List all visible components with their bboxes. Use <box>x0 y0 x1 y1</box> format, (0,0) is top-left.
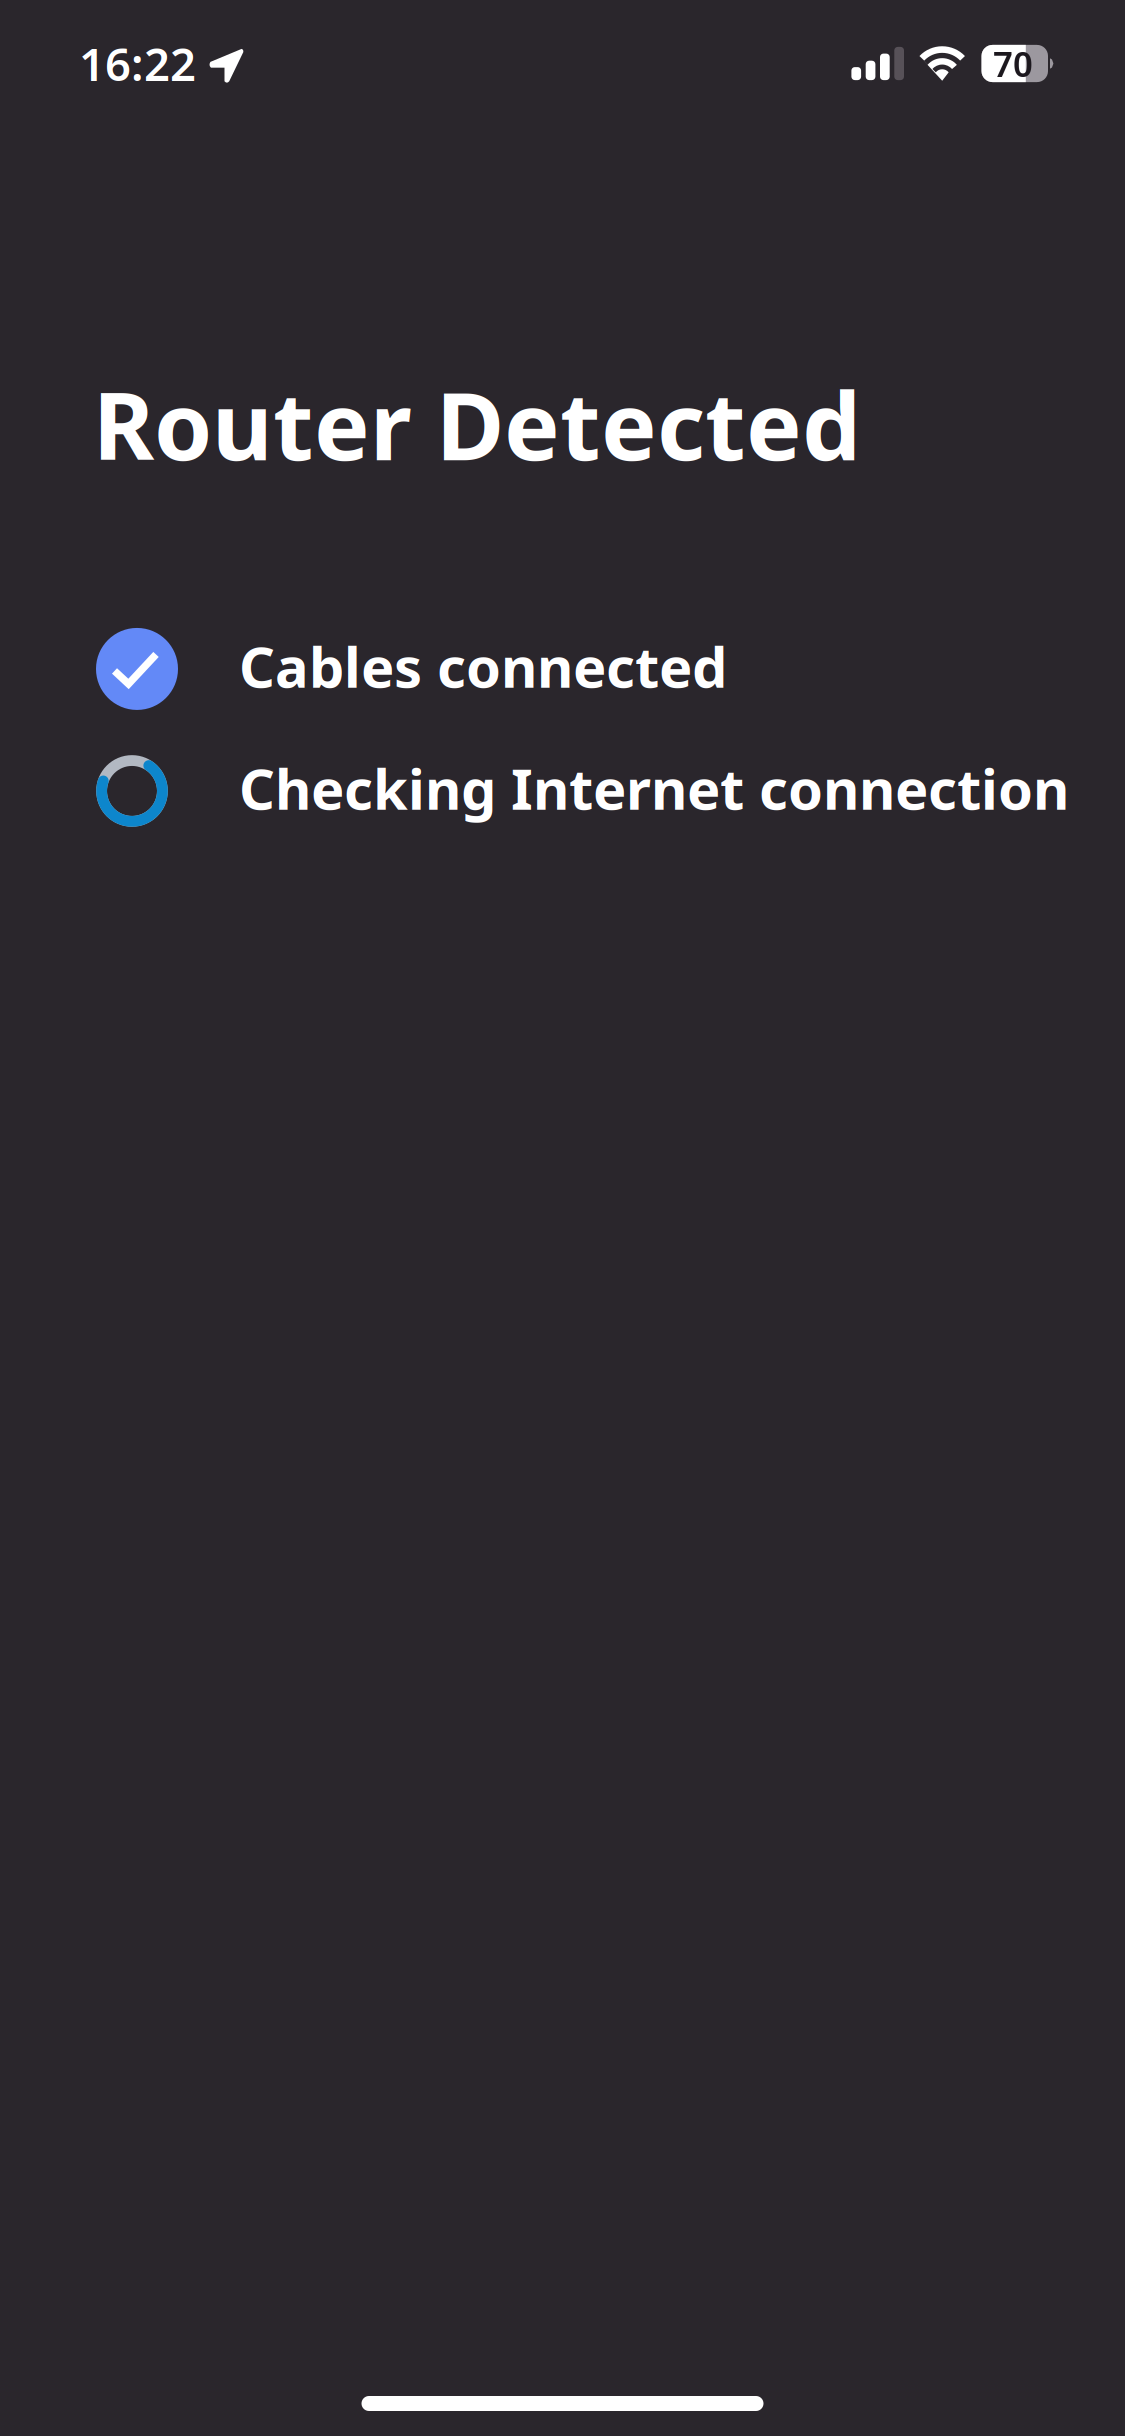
staticText: 16:22 <box>79 33 196 94</box>
staticText: Router Detected <box>93 362 861 486</box>
staticText: 70 <box>993 40 1033 86</box>
staticText: Cables connected <box>239 629 727 703</box>
staticText: Checking Internet connection <box>239 751 1069 825</box>
